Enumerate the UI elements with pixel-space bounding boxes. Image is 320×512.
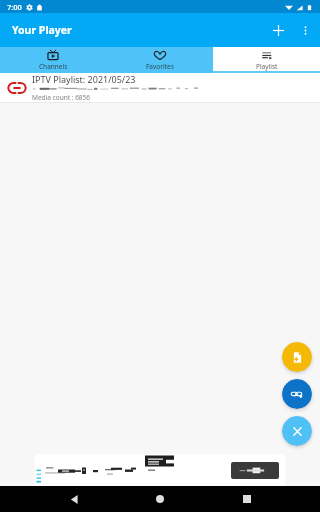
staticText: Your Player — [12, 23, 72, 37]
button[interactable]: Add link — [282, 379, 312, 409]
button[interactable]: More options — [292, 17, 318, 43]
button[interactable]: Close — [282, 416, 312, 446]
button[interactable]: Add — [264, 16, 292, 44]
button[interactable]: Channels — [0, 47, 106, 71]
button[interactable]: Home — [147, 486, 173, 512]
staticText: Media count : 6856 — [32, 93, 90, 102]
staticText: Channels — [39, 62, 68, 71]
staticText: Playlist — [256, 62, 278, 71]
staticText: Favorites — [146, 62, 174, 71]
staticText: IPTV Playlist: 2021/05/23 — [32, 73, 136, 85]
button[interactable]: Playlist — [213, 47, 320, 71]
button[interactable]: Add file — [282, 342, 312, 372]
button[interactable]: Install — [35, 454, 285, 486]
button[interactable]: IPTV Playlist: 2021/05/23 — [0, 73, 320, 102]
button[interactable]: Install — [231, 462, 279, 479]
button[interactable]: Back — [61, 486, 87, 512]
staticText: 7:00 — [7, 2, 22, 12]
button[interactable]: Favorites — [106, 47, 213, 71]
button[interactable]: Recents — [234, 486, 260, 512]
